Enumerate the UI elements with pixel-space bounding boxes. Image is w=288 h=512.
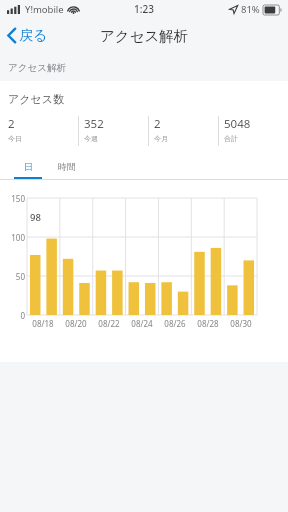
staticText: 08/26 bbox=[164, 318, 186, 329]
button[interactable]: 日 bbox=[14, 158, 42, 179]
staticText: 81% bbox=[241, 3, 260, 16]
staticText: 時間 bbox=[58, 161, 76, 172]
staticText: 08/18 bbox=[32, 318, 54, 329]
staticText: 1:23 bbox=[134, 2, 154, 16]
staticText: 352 bbox=[84, 116, 104, 132]
button[interactable]: 戻る bbox=[0, 18, 56, 53]
staticText: 日 bbox=[24, 161, 33, 172]
staticText: 今月 bbox=[154, 134, 168, 143]
staticText: 08/20 bbox=[65, 318, 87, 329]
staticText: 50 bbox=[15, 271, 25, 282]
staticText: 08/22 bbox=[98, 318, 120, 329]
staticText: 100 bbox=[11, 232, 25, 243]
staticText: 08/24 bbox=[131, 318, 153, 329]
staticText: 戻る bbox=[19, 27, 48, 45]
staticText: 98 bbox=[30, 211, 41, 224]
staticText: 今週 bbox=[84, 134, 98, 143]
staticText: 08/30 bbox=[230, 318, 252, 329]
staticText: 2 bbox=[8, 116, 15, 132]
button[interactable]: 時間 bbox=[50, 158, 84, 179]
staticText: アクセス解析 bbox=[100, 27, 189, 45]
staticText: 150 bbox=[11, 193, 25, 204]
staticText: Y!mobile bbox=[25, 3, 64, 16]
staticText: 5048 bbox=[224, 116, 251, 132]
staticText: 今日 bbox=[8, 134, 22, 143]
staticText: 0 bbox=[20, 310, 25, 321]
staticText: アクセス数 bbox=[8, 92, 65, 106]
staticText: 2 bbox=[154, 116, 161, 132]
staticText: 08/28 bbox=[197, 318, 219, 329]
staticText: 合計 bbox=[224, 134, 238, 143]
staticText: アクセス解析 bbox=[8, 62, 66, 74]
